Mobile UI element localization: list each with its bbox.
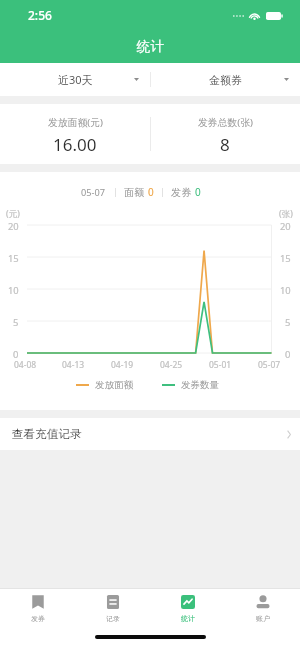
button[interactable]: 统计 <box>150 589 225 629</box>
staticText: 04-13 <box>62 359 85 371</box>
staticText: 发券 <box>171 186 191 199</box>
staticText: 05-01 <box>209 359 232 371</box>
staticText: 统计 <box>137 38 164 55</box>
staticText: 10 <box>8 284 19 297</box>
button[interactable]: 记录 <box>75 589 150 629</box>
staticText: (元) <box>6 208 20 220</box>
staticText: 10 <box>280 284 291 297</box>
staticText: 05-07 <box>258 359 281 371</box>
staticText: 15 <box>280 252 291 265</box>
staticText: 发券 <box>31 614 45 623</box>
staticText: (张) <box>279 208 293 220</box>
staticText: 0 <box>148 185 154 199</box>
staticText: 8 <box>220 133 230 156</box>
staticText: 账户 <box>256 614 270 623</box>
staticText: 04-19 <box>111 359 134 371</box>
button[interactable]: 发券 <box>0 589 75 629</box>
staticText: 0 <box>13 348 19 361</box>
staticText: 近30天 <box>58 72 93 87</box>
staticText: 04-25 <box>160 359 183 371</box>
staticText: 04-08 <box>14 359 37 371</box>
staticText: 5 <box>13 316 19 329</box>
button[interactable]: 查看充值记录 <box>0 418 300 450</box>
staticText: 查看充值记录 <box>12 427 82 442</box>
staticText: 发券总数(张) <box>198 116 253 129</box>
staticText: 0 <box>285 348 291 361</box>
staticText: 20 <box>280 220 291 233</box>
staticText: 面额 <box>124 186 144 199</box>
staticText: 发放面额(元) <box>48 116 103 129</box>
staticText: 0 <box>195 185 201 199</box>
staticText: 05-07 <box>81 186 105 199</box>
staticText: 记录 <box>106 614 120 623</box>
staticText: 15 <box>8 252 19 265</box>
staticText: 2:56 <box>28 7 52 23</box>
staticText: 金额券 <box>209 73 242 87</box>
staticText: 发放面额 <box>95 379 133 391</box>
button[interactable]: 账户 <box>225 589 300 629</box>
button[interactable]: 近30天 <box>0 63 150 96</box>
staticText: 16.00 <box>53 133 97 156</box>
button[interactable]: 金额券 <box>150 63 300 96</box>
staticText: 5 <box>285 316 291 329</box>
staticText: 发券数量 <box>181 379 219 391</box>
staticText: 20 <box>8 220 19 233</box>
staticText: 统计 <box>181 614 195 623</box>
